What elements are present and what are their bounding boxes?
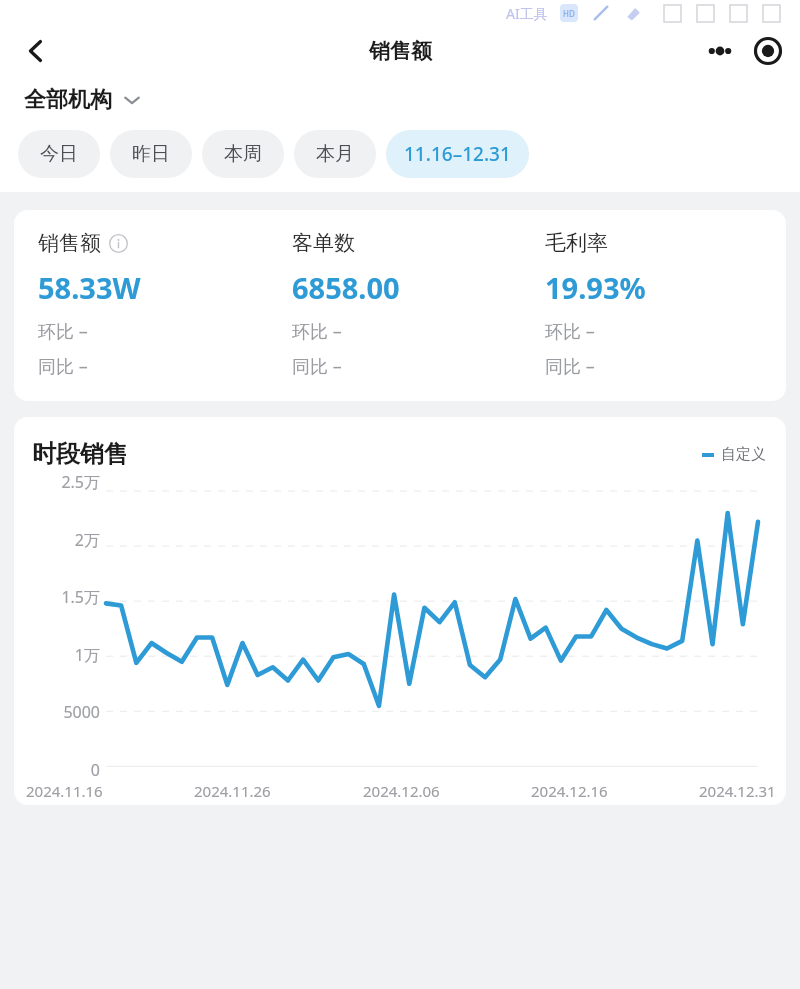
button[interactable]: 全部机构 [24,86,142,114]
staticText: 昨日 [132,142,170,166]
staticText: 时段销售 [32,439,128,469]
staticText: 同比 – [38,354,88,379]
button[interactable]: 本周 [202,130,284,178]
staticText: HD [563,8,575,19]
button[interactable]: 销售额 [14,210,786,401]
staticText: 2024.11.16 [26,781,103,801]
staticText: 6858.00 [292,268,400,307]
staticText: 环比 – [545,319,595,344]
button[interactable]: Record [746,29,790,73]
staticText: 2024.12.06 [363,781,440,801]
staticText: 11.16–12.31 [404,141,511,167]
staticText: 2.5万 [14,471,100,493]
staticText: 1.5万 [14,586,100,608]
staticText: 1万 [14,644,100,666]
staticText: 19.93% [545,268,646,307]
staticText: 2024.12.31 [699,781,776,801]
button[interactable]: 自定义 [702,445,766,464]
staticText: 环比 – [38,319,88,344]
staticText: 销售额 [369,38,432,64]
staticText: 全部机构 [24,86,112,114]
staticText: 2万 [14,529,100,551]
staticText: 今日 [40,142,78,166]
staticText: 58.33W [38,268,141,307]
staticText: 同比 – [292,354,342,379]
staticText: 自定义 [721,445,766,464]
button[interactable]: 本月 [294,130,376,178]
staticText: 2024.12.16 [531,781,608,801]
staticText: 毛利率 [545,230,608,256]
staticText: 同比 – [545,354,595,379]
staticText: 本月 [316,142,354,166]
button[interactable]: More options [698,29,742,73]
staticText: 5000 [14,701,100,723]
button[interactable]: 11.16–12.31 [386,130,529,178]
staticText: 销售额 [38,230,101,256]
staticText: 本周 [224,142,262,166]
staticText: 2024.11.26 [194,781,271,801]
staticText: 客单数 [292,230,355,256]
staticText: 0 [14,759,100,781]
staticText: 环比 – [292,319,342,344]
button[interactable]: Back [8,26,64,76]
button[interactable]: 昨日 [110,130,192,178]
button[interactable]: 今日 [18,130,100,178]
staticText: AI工具 [506,4,548,23]
